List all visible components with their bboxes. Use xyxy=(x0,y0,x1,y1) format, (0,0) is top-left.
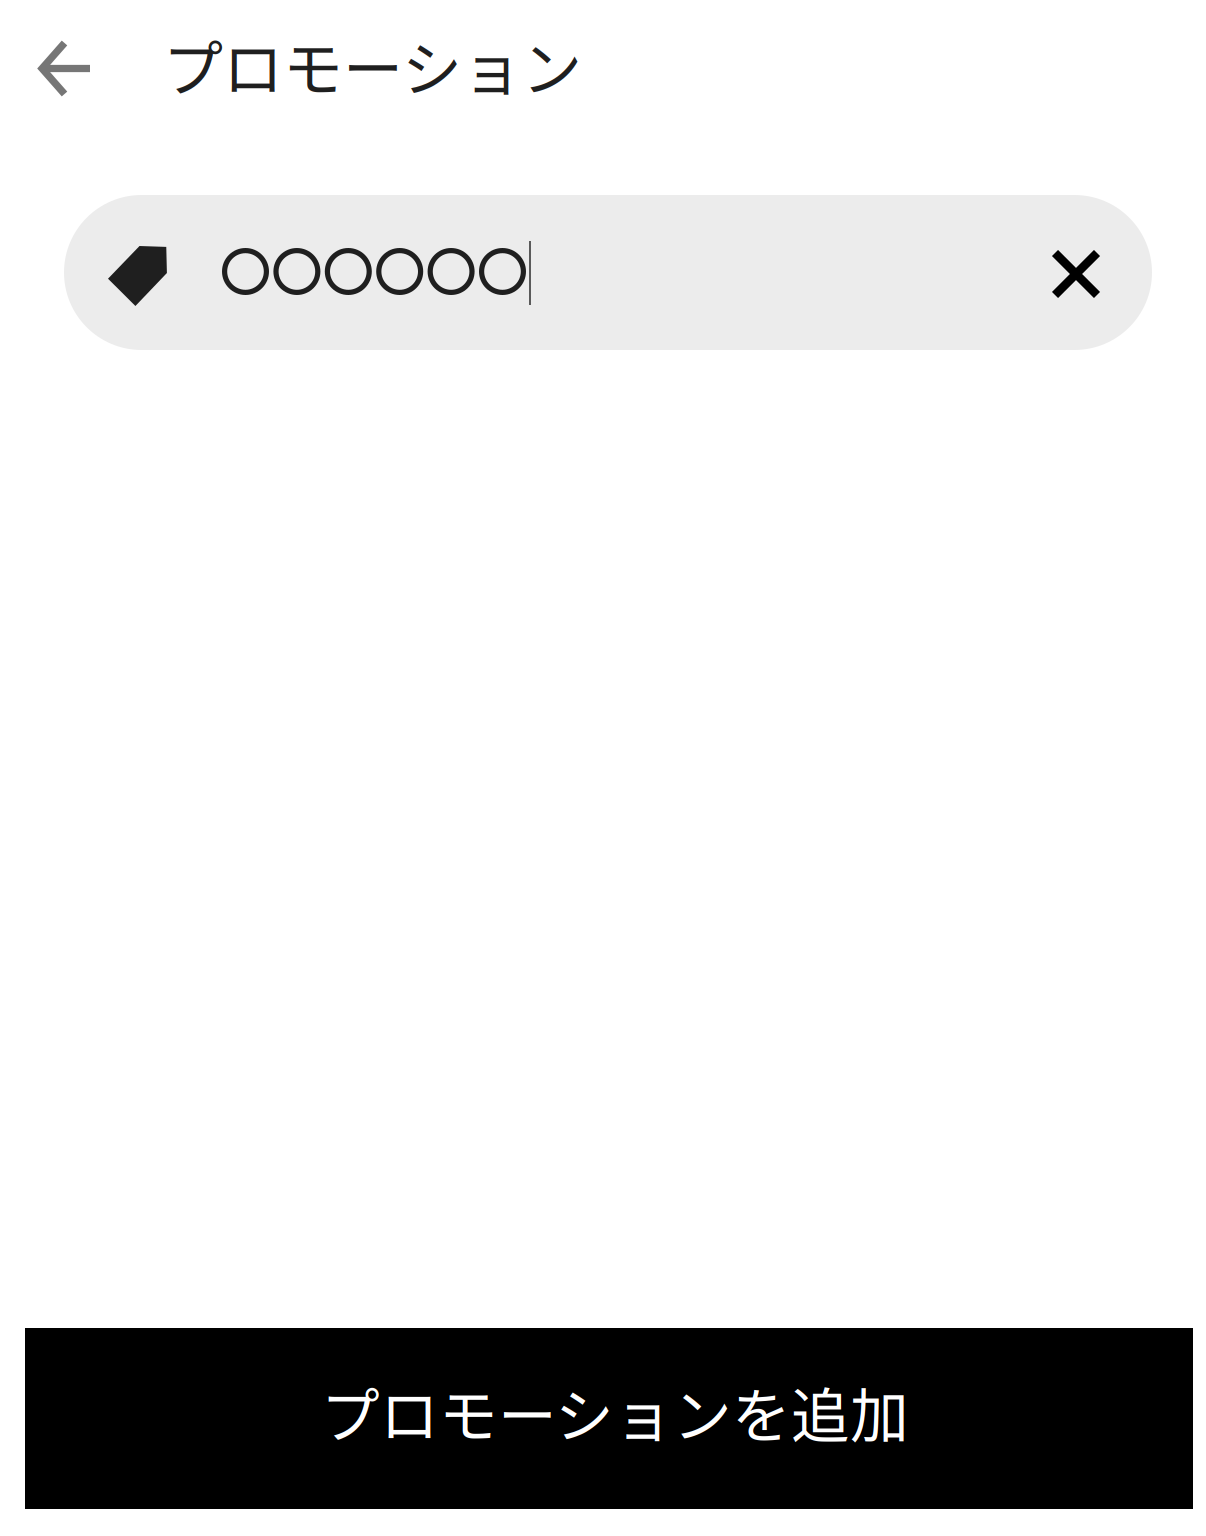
button[interactable]: 戻る xyxy=(6,13,122,123)
button[interactable]: プロモーションを追加 xyxy=(25,1328,1193,1509)
button[interactable]: クリア xyxy=(1021,219,1131,329)
staticText: プロモーションを追加 xyxy=(321,1369,909,1454)
staticText: プロモーション xyxy=(163,22,582,108)
